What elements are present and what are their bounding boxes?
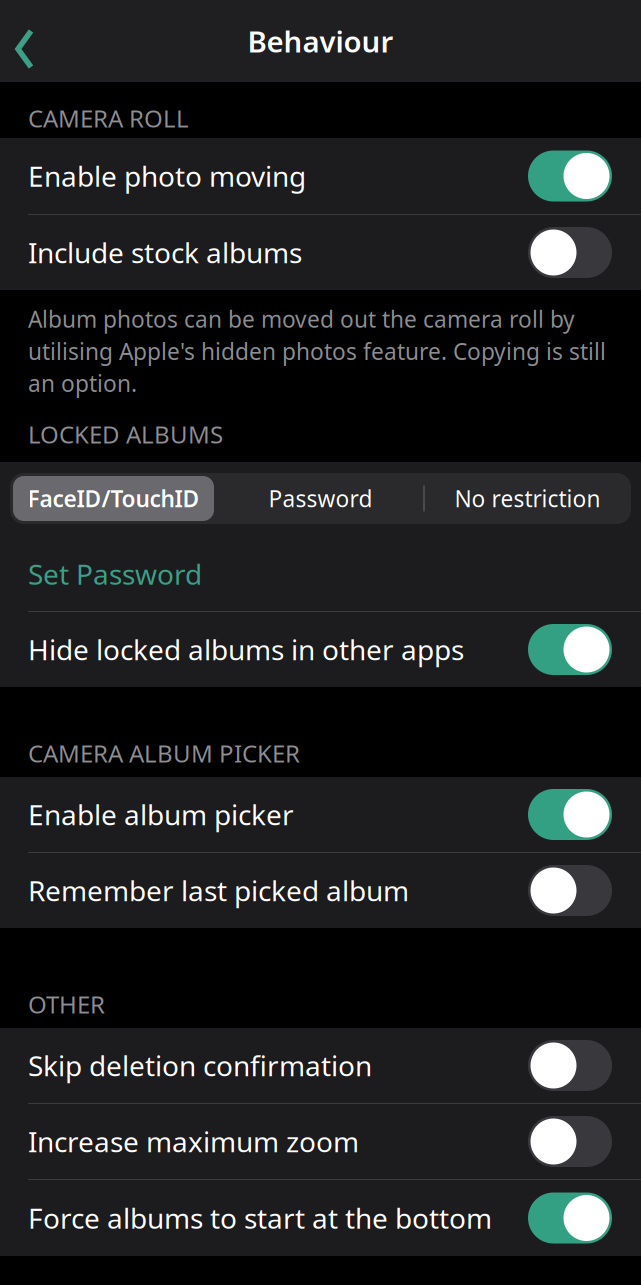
staticText: CAMERA ALBUM PICKER xyxy=(28,737,300,769)
staticText: No restriction xyxy=(454,483,600,513)
staticText: CAMERA ROLL xyxy=(28,102,189,134)
staticText: OTHER xyxy=(28,988,105,1020)
button[interactable]: Back xyxy=(0,12,34,69)
button[interactable]: Enable photo moving xyxy=(0,138,641,214)
button[interactable]: No restriction xyxy=(424,473,631,524)
button[interactable]: Password xyxy=(217,473,424,524)
button[interactable]: Set Password xyxy=(0,537,641,611)
staticText: Increase maximum zoom xyxy=(28,1123,359,1160)
button[interactable]: Force albums to start at the bottom xyxy=(0,1180,641,1256)
staticText: Enable photo moving xyxy=(28,157,306,195)
staticText: Remember last picked album xyxy=(28,872,409,909)
staticText: Password xyxy=(268,483,372,513)
button[interactable]: Remember last picked album xyxy=(0,853,641,928)
staticText: Hide locked albums in other apps xyxy=(28,631,464,668)
staticText: Force albums to start at the bottom xyxy=(28,1199,492,1237)
button[interactable]: FaceID/TouchID xyxy=(10,473,217,524)
button[interactable]: Include stock albums xyxy=(0,215,641,290)
staticText: LOCKED ALBUMS xyxy=(28,418,223,450)
staticText: Album photos can be moved out the camera… xyxy=(28,304,606,398)
staticText: FaceID/TouchID xyxy=(27,483,199,513)
staticText: Enable album picker xyxy=(28,796,294,833)
button[interactable]: Skip deletion confirmation xyxy=(0,1028,641,1103)
staticText: Skip deletion confirmation xyxy=(28,1047,372,1084)
staticText: Set Password xyxy=(28,555,202,593)
button[interactable]: Hide locked albums in other apps xyxy=(0,612,641,687)
staticText: Include stock albums xyxy=(28,234,302,271)
button[interactable]: Increase maximum zoom xyxy=(0,1104,641,1179)
staticText: Behaviour xyxy=(247,21,393,60)
button[interactable]: Enable album picker xyxy=(0,777,641,852)
